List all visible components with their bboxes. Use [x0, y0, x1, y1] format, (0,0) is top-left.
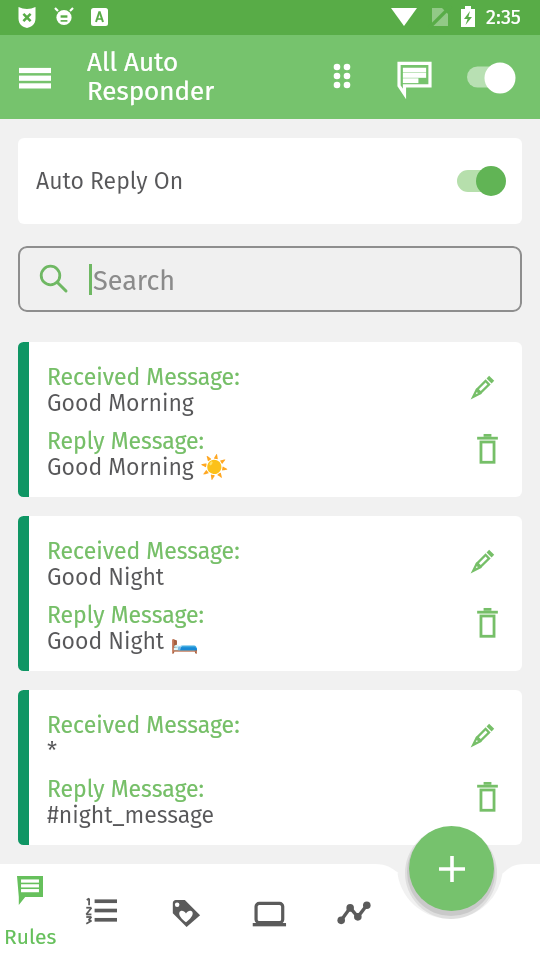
button[interactable] — [18, 516, 522, 671]
staticText: * — [47, 737, 58, 765]
button[interactable]: Statistics — [320, 874, 388, 952]
button[interactable]: Delete rule — [462, 423, 512, 473]
button[interactable]: Tags — [152, 874, 220, 952]
staticText: Received Message: — [47, 363, 240, 391]
staticText: Reply Message: — [47, 601, 205, 629]
staticText: All Auto — [87, 47, 179, 78]
button[interactable]: Delete rule — [462, 597, 512, 647]
staticText: Search — [93, 265, 176, 297]
button[interactable]: Messages — [392, 56, 436, 100]
button[interactable]: Open navigation menu — [14, 55, 58, 99]
staticText: Rules — [4, 924, 57, 949]
staticText: Responder — [87, 76, 215, 107]
button[interactable]: Rules — [0, 874, 64, 952]
staticText: Good Morning ☀️ — [47, 453, 229, 481]
staticText: Received Message: — [47, 711, 240, 739]
button[interactable]: Numbered list — [67, 874, 135, 952]
staticText: Reply Message: — [47, 775, 205, 803]
staticText: Good Night — [47, 563, 165, 591]
button[interactable]: Search — [18, 246, 522, 312]
button[interactable]: Edit rule — [457, 362, 507, 412]
button[interactable]: Auto Reply On — [18, 138, 522, 224]
staticText: #night_message — [47, 801, 215, 829]
button[interactable]: Devices — [236, 874, 304, 952]
button[interactable]: Enable responder — [459, 61, 521, 93]
staticText: Reply Message: — [47, 427, 205, 455]
staticText: 2:35 — [486, 5, 521, 29]
staticText: Good Night 🛏️ — [47, 627, 199, 655]
staticText: Auto Reply On — [36, 167, 184, 195]
button[interactable] — [18, 342, 522, 497]
button[interactable]: Apps — [320, 54, 364, 98]
button[interactable]: Edit rule — [457, 710, 507, 760]
button[interactable] — [18, 690, 522, 845]
staticText: Received Message: — [47, 537, 240, 565]
button[interactable]: Delete rule — [462, 771, 512, 821]
button[interactable]: Edit rule — [457, 536, 507, 586]
staticText: Good Morning — [47, 389, 194, 417]
button[interactable]: Auto reply toggle — [442, 163, 506, 199]
button[interactable]: Add rule — [409, 826, 494, 911]
